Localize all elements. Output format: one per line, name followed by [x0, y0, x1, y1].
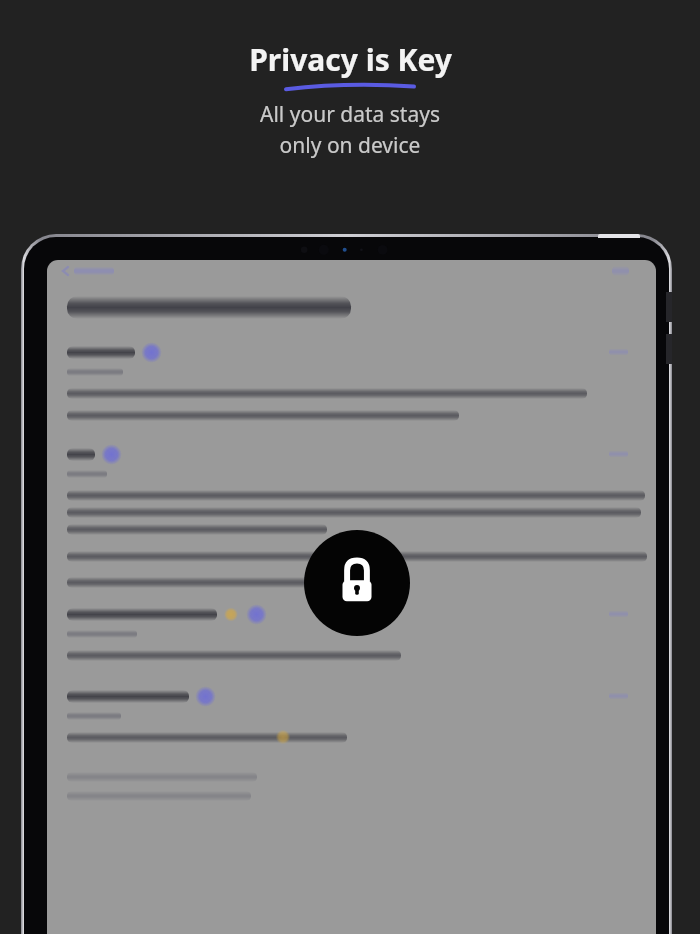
staticText: Privacy is Key [249, 39, 452, 80]
button[interactable]: Power [598, 234, 640, 238]
staticText: All your data stays only on device [260, 100, 440, 159]
button[interactable]: Privacy lock [304, 530, 410, 636]
